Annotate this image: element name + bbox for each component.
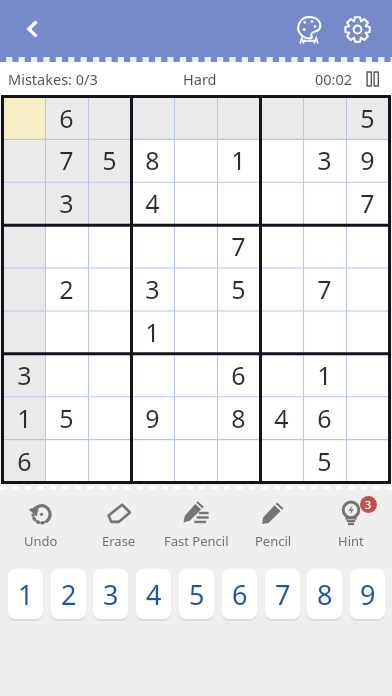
button[interactable] [88, 439, 131, 482]
button[interactable]: 2 [51, 569, 86, 619]
button[interactable]: 1 [131, 310, 174, 353]
button[interactable] [303, 224, 346, 267]
button[interactable]: Theme [288, 8, 330, 50]
button[interactable]: Settings [336, 8, 378, 50]
button[interactable]: 8 [131, 139, 174, 181]
button[interactable]: 5 [303, 439, 346, 482]
button[interactable]: Pause [362, 68, 384, 90]
button[interactable] [174, 97, 217, 139]
button[interactable]: 1 [303, 353, 346, 396]
button[interactable]: 4 [131, 181, 174, 224]
button[interactable]: 5 [179, 569, 214, 619]
button[interactable] [131, 439, 174, 482]
button[interactable]: 5 [45, 396, 88, 439]
button[interactable] [260, 439, 303, 482]
button[interactable] [45, 439, 88, 482]
button[interactable]: 8 [217, 396, 260, 439]
button[interactable]: 1 [8, 569, 43, 619]
button[interactable]: 3 [3, 353, 45, 396]
button[interactable] [346, 267, 389, 310]
button[interactable] [88, 353, 131, 396]
staticText: Fast Pencil [164, 532, 229, 550]
button[interactable] [45, 310, 88, 353]
button[interactable] [346, 353, 389, 396]
button[interactable] [217, 439, 260, 482]
button[interactable]: 8 [307, 569, 342, 619]
button[interactable] [346, 439, 389, 482]
button[interactable]: 5 [346, 97, 389, 139]
button[interactable]: 6 [222, 569, 257, 619]
button[interactable] [3, 181, 45, 224]
button[interactable]: 1 [217, 139, 260, 181]
button[interactable]: Erase [83, 493, 155, 555]
button[interactable] [131, 97, 174, 139]
button[interactable] [217, 181, 260, 224]
button[interactable] [260, 224, 303, 267]
button[interactable] [217, 310, 260, 353]
button[interactable] [3, 139, 45, 181]
button[interactable]: Pencil [237, 493, 309, 555]
button[interactable]: 6 [303, 396, 346, 439]
button[interactable]: 4 [136, 569, 171, 619]
button[interactable]: 6 [3, 439, 45, 482]
button[interactable] [260, 310, 303, 353]
button[interactable] [303, 181, 346, 224]
button[interactable] [303, 310, 346, 353]
button[interactable] [131, 353, 174, 396]
button[interactable] [174, 267, 217, 310]
button[interactable]: 1 [3, 396, 45, 439]
button[interactable] [88, 224, 131, 267]
button[interactable] [88, 181, 131, 224]
button[interactable] [3, 224, 45, 267]
button[interactable] [260, 267, 303, 310]
button[interactable]: 6 [217, 353, 260, 396]
button[interactable]: 6 [45, 97, 88, 139]
button[interactable]: 7 [45, 139, 88, 181]
button[interactable]: 3 [315, 493, 387, 555]
button[interactable] [260, 181, 303, 224]
button[interactable] [174, 353, 217, 396]
button[interactable] [174, 224, 217, 267]
button[interactable] [88, 267, 131, 310]
button[interactable] [346, 310, 389, 353]
button[interactable] [260, 139, 303, 181]
button[interactable]: 9 [346, 139, 389, 181]
button[interactable]: 3 [303, 139, 346, 181]
button[interactable] [346, 224, 389, 267]
button[interactable] [131, 224, 174, 267]
button[interactable] [174, 396, 217, 439]
button[interactable] [303, 97, 346, 139]
button[interactable] [260, 353, 303, 396]
button[interactable]: 2 [45, 267, 88, 310]
button[interactable]: 7 [346, 181, 389, 224]
button[interactable]: 3 [131, 267, 174, 310]
button[interactable] [88, 396, 131, 439]
button[interactable]: 5 [217, 267, 260, 310]
button[interactable] [260, 97, 303, 139]
button[interactable]: 7 [217, 224, 260, 267]
button[interactable]: Fast Pencil [160, 493, 232, 555]
button[interactable] [45, 224, 88, 267]
button[interactable]: 5 [88, 139, 131, 181]
button[interactable] [174, 181, 217, 224]
button[interactable]: 3 [93, 569, 128, 619]
button[interactable] [88, 97, 131, 139]
button[interactable]: 3 [45, 181, 88, 224]
button[interactable] [3, 310, 45, 353]
button[interactable]: 4 [260, 396, 303, 439]
button[interactable] [174, 310, 217, 353]
button[interactable]: Back [14, 10, 52, 48]
button[interactable] [3, 267, 45, 310]
button[interactable]: 7 [265, 569, 300, 619]
button[interactable]: Undo [5, 493, 77, 555]
button[interactable]: 7 [303, 267, 346, 310]
button[interactable]: 9 [350, 569, 385, 619]
button[interactable] [88, 310, 131, 353]
button[interactable] [3, 97, 45, 139]
button[interactable] [45, 353, 88, 396]
button[interactable]: 9 [131, 396, 174, 439]
button[interactable] [174, 439, 217, 482]
button[interactable] [217, 97, 260, 139]
button[interactable] [174, 139, 217, 181]
button[interactable] [346, 396, 389, 439]
